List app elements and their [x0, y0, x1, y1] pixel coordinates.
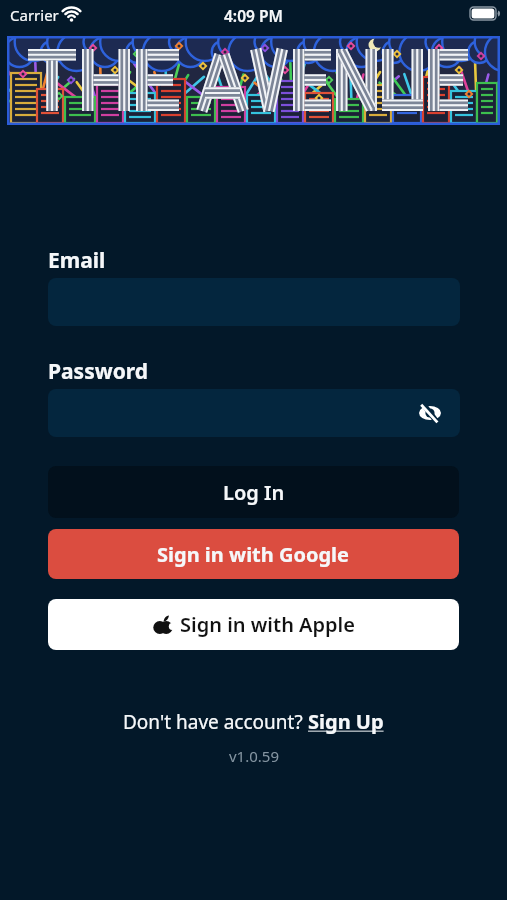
button[interactable]: Sign in with Apple: [48, 599, 459, 650]
staticText: Sign in with Apple: [180, 611, 355, 638]
staticText: Log In: [223, 479, 285, 506]
button[interactable]: Log In: [48, 466, 459, 518]
staticText: Sign in with Google: [157, 541, 350, 568]
staticText: 4:09 PM: [224, 5, 283, 26]
button[interactable]: [48, 389, 460, 437]
staticText: v1.0.59: [229, 746, 279, 766]
staticText: Carrier: [10, 5, 59, 25]
staticText: Sign Up: [308, 708, 384, 735]
button[interactable]: Sign in with Google: [48, 529, 459, 579]
button[interactable]: Sign Up: [308, 708, 384, 735]
staticText: Don't have account?: [123, 709, 308, 735]
staticText: Password: [48, 357, 149, 386]
staticText: Email: [48, 246, 106, 275]
